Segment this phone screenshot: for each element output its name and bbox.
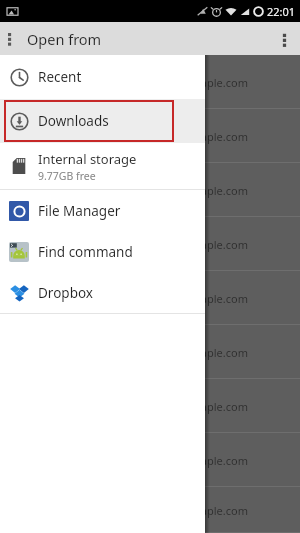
- staticText: rmaple.com: [186, 399, 248, 414]
- staticText: Find command: [38, 243, 133, 261]
- staticText: File Manager: [38, 202, 121, 220]
- button[interactable]: Internal storage: [0, 143, 205, 189]
- staticText: 9.77GB free: [38, 169, 96, 183]
- button[interactable]: Downloads: [0, 99, 205, 143]
- staticText: rmaple.com: [186, 291, 248, 306]
- staticText: rmaple.com: [186, 345, 248, 360]
- staticText: rmaple.com: [186, 183, 248, 198]
- button[interactable]: Recent: [0, 55, 205, 99]
- staticText: rmaple.com: [186, 75, 248, 90]
- staticText: Recent: [38, 68, 82, 86]
- staticText: Dropbox: [38, 284, 93, 302]
- staticText: rmaple.com: [186, 453, 248, 468]
- staticText: 22:01: [267, 4, 296, 19]
- button[interactable]: Open navigation drawer: [0, 25, 28, 53]
- button[interactable]: More options: [268, 23, 300, 55]
- button[interactable]: Dropbox: [0, 272, 205, 313]
- button[interactable]: Find command: [0, 231, 205, 272]
- staticText: Open from: [27, 29, 102, 49]
- staticText: rmaple.com: [186, 237, 248, 252]
- button[interactable]: File Manager: [0, 190, 205, 231]
- staticText: rmaple.com: [186, 129, 248, 144]
- staticText: rmaple.com: [186, 503, 248, 518]
- staticText: Internal storage: [38, 150, 137, 168]
- staticText: Downloads: [38, 112, 109, 130]
